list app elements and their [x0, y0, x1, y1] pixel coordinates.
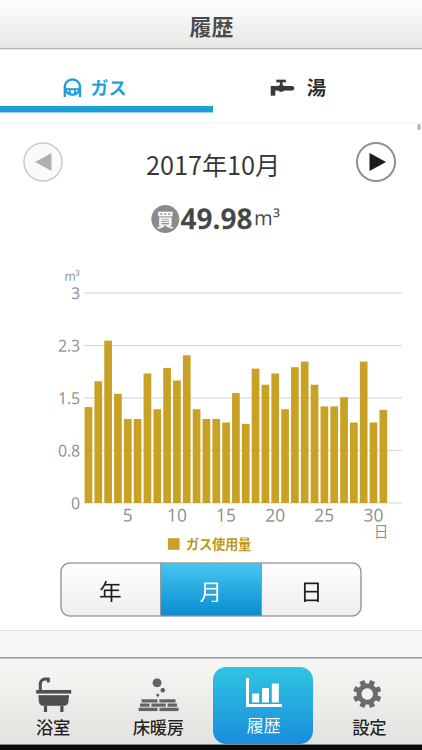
staticText: 15 — [216, 503, 236, 526]
staticText: 履歴 — [246, 712, 280, 737]
staticText: m³ — [64, 268, 79, 284]
staticText: 0 — [71, 492, 80, 514]
staticText: 0.8 — [58, 440, 80, 461]
button[interactable]: 設定 — [319, 658, 419, 742]
button[interactable]: 湯 — [213, 49, 422, 106]
staticText: 浴室 — [36, 714, 70, 739]
staticText: 年 — [99, 574, 122, 607]
staticText: 5 — [123, 503, 133, 526]
staticText: 20 — [265, 503, 285, 526]
button[interactable]: 履歴 — [213, 667, 313, 744]
staticText: m³ — [254, 204, 280, 231]
staticText: 25 — [314, 503, 334, 526]
staticText: 1.5 — [58, 387, 80, 409]
staticText: 履歴 — [189, 10, 233, 41]
button[interactable] — [24, 143, 62, 181]
button[interactable]: ガス — [0, 49, 213, 106]
button[interactable]: 浴室 — [3, 658, 103, 742]
button[interactable]: 年 — [61, 563, 160, 616]
staticText: 49.98 — [181, 200, 253, 237]
staticText: 日 — [300, 574, 323, 607]
button[interactable]: 床暖房 — [108, 658, 208, 742]
staticText: 30 — [363, 503, 383, 526]
staticText: ガス — [90, 74, 126, 100]
staticText: 日 — [374, 520, 389, 541]
staticText: 設定 — [352, 714, 386, 739]
staticText: 10 — [167, 503, 187, 526]
button[interactable] — [357, 143, 395, 181]
staticText: 2.3 — [58, 335, 80, 356]
staticText: 買 — [156, 206, 174, 232]
staticText: 湯 — [307, 73, 326, 101]
staticText: ガス使用量 — [186, 534, 251, 553]
staticText: 2017年10月 — [146, 146, 280, 182]
staticText: 床暖房 — [133, 714, 184, 739]
staticText: 3 — [71, 282, 80, 304]
button[interactable]: 日 — [262, 563, 361, 616]
button[interactable]: 月 — [161, 563, 261, 616]
staticText: 月 — [199, 574, 222, 607]
